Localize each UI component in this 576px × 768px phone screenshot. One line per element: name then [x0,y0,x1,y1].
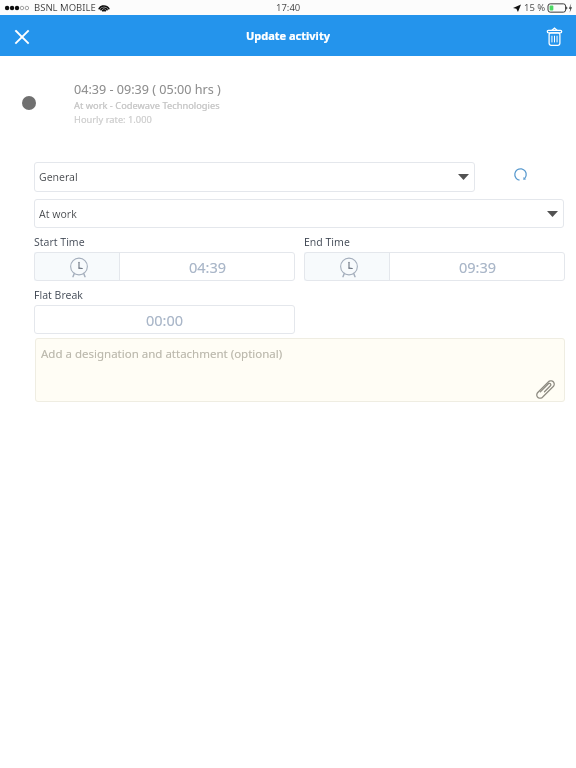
staticText: Add a designation and attachment (option… [41,346,283,362]
staticText: Start Time [34,235,85,249]
staticText: BSNL MOBILE [34,1,96,14]
staticText: Flat Break [34,288,83,302]
button[interactable]: General [34,162,475,192]
staticText: 15 % [524,1,546,14]
button[interactable]: Attach file [532,376,558,402]
staticText: 04:39 [189,257,227,277]
button[interactable]: Close [0,15,41,56]
staticText: 17:40 [276,1,301,14]
staticText: Hourly rate: 1.000 [74,113,152,126]
staticText: General [39,170,78,184]
button[interactable]: Delete [535,15,576,56]
staticText: At work [39,207,77,221]
staticText: End Time [304,235,350,249]
button[interactable]: 04:39 [34,252,295,281]
staticText: 00:00 [146,310,184,330]
staticText: 04:39 - 09:39 ( 05:00 hrs ) [74,81,221,98]
button[interactable]: 00:00 [34,305,295,334]
staticText: Update activity [246,28,330,43]
staticText: At work - Codewave Technologies [74,99,220,112]
button[interactable]: Refresh [496,159,544,189]
staticText: 09:39 [459,257,497,277]
button[interactable]: At work [34,199,564,228]
button[interactable]: Add a designation and attachment (option… [35,338,565,402]
button[interactable]: 09:39 [304,252,565,281]
